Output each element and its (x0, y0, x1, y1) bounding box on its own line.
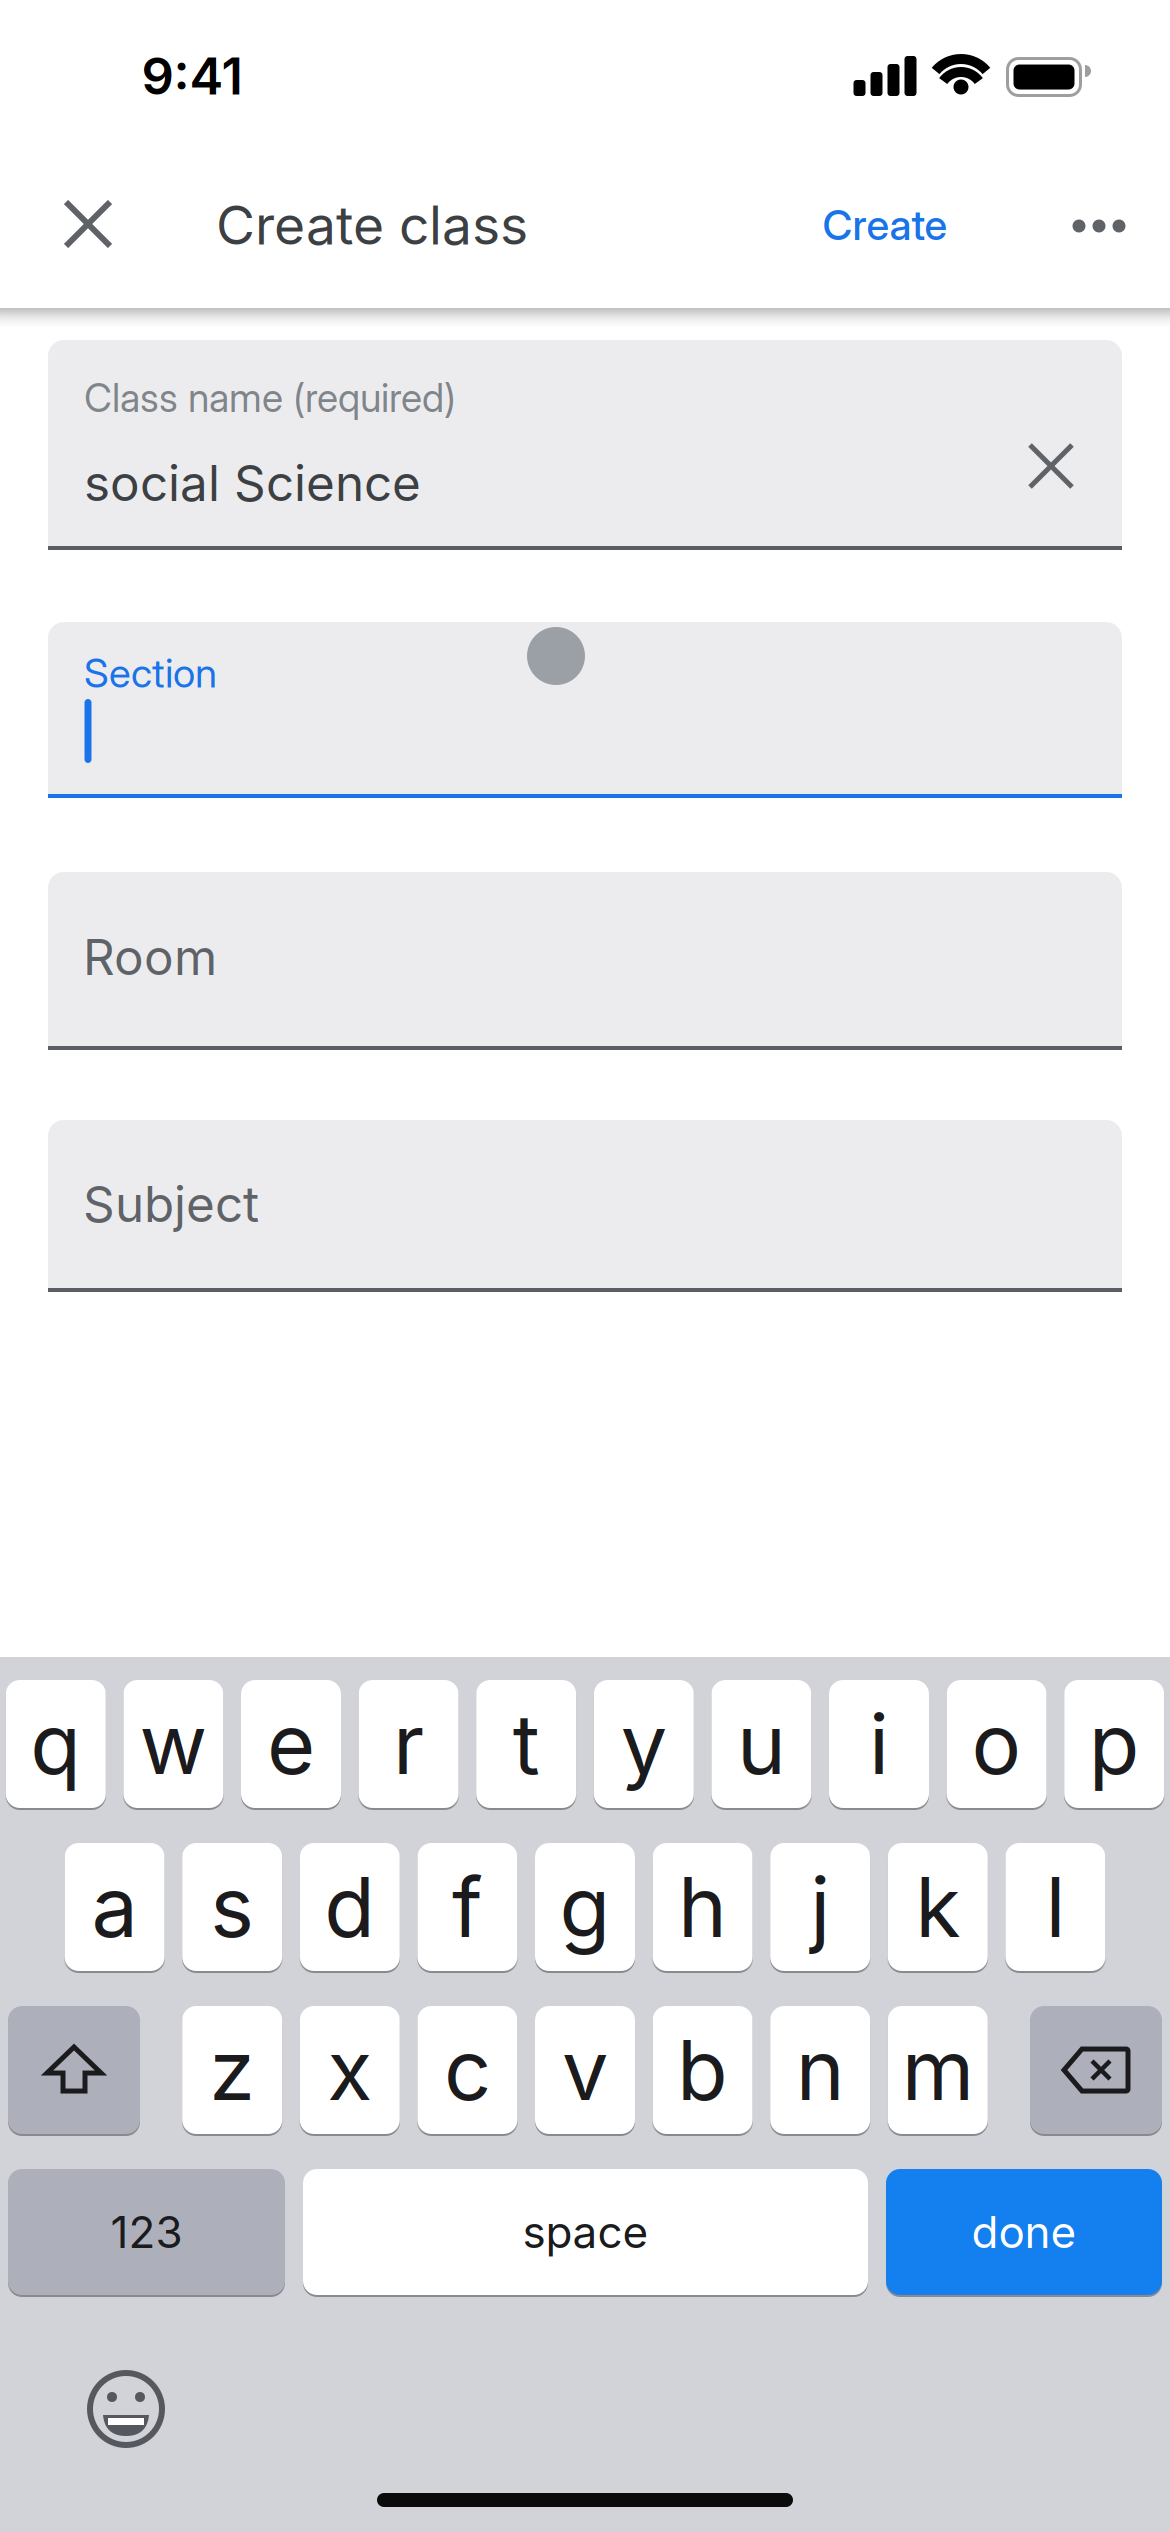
staticText: e (267, 1695, 315, 1793)
staticText: q (30, 1695, 81, 1793)
staticText: z (209, 2021, 255, 2119)
button[interactable]: h (653, 1843, 753, 1971)
button[interactable]: Shift (8, 2006, 140, 2134)
button[interactable]: z (182, 2006, 282, 2134)
button[interactable]: x (300, 2006, 400, 2134)
staticText: l (1045, 1858, 1065, 1956)
button[interactable]: a (65, 1843, 165, 1971)
staticText: 9:41 (141, 46, 242, 106)
staticText: c (444, 2021, 491, 2119)
button[interactable]: p (1064, 1680, 1164, 1808)
button[interactable]: Clear class name (1007, 422, 1095, 510)
staticText: s (210, 1858, 254, 1956)
button[interactable]: 123 (8, 2169, 285, 2295)
button[interactable]: Delete (1030, 2006, 1162, 2134)
staticText: p (1089, 1695, 1140, 1793)
button[interactable]: w (123, 1680, 223, 1808)
staticText: d (324, 1858, 375, 1956)
staticText: j (810, 1858, 830, 1956)
staticText: g (559, 1858, 610, 1956)
button[interactable]: Room (48, 872, 1122, 1050)
button[interactable]: Close (44, 180, 132, 268)
staticText: k (915, 1858, 960, 1956)
staticText: u (737, 1695, 786, 1793)
staticText: t (513, 1695, 540, 1793)
button[interactable]: n (770, 2006, 870, 2134)
button[interactable]: g (535, 1843, 635, 1971)
button[interactable]: Subject (48, 1120, 1122, 1292)
staticText: w (139, 1695, 207, 1793)
staticText: y (621, 1695, 667, 1793)
staticText: space (522, 2206, 648, 2258)
button[interactable]: Class name (48, 340, 1122, 550)
staticText: h (678, 1858, 727, 1956)
staticText: i (869, 1695, 889, 1793)
staticText: Create class (216, 193, 528, 256)
staticText: n (796, 2021, 845, 2119)
staticText: 123 (110, 2206, 182, 2258)
button[interactable]: space (303, 2169, 868, 2295)
staticText: Subject (83, 1175, 259, 1233)
staticText: b (677, 2021, 728, 2119)
button[interactable]: r (359, 1680, 459, 1808)
button[interactable]: Create (765, 181, 1005, 269)
staticText: Room (83, 928, 217, 986)
button[interactable]: e (241, 1680, 341, 1808)
button[interactable]: l (1005, 1843, 1105, 1971)
button[interactable]: c (417, 2006, 517, 2134)
button[interactable]: f (417, 1843, 517, 1971)
staticText: Section (84, 649, 217, 697)
button[interactable]: v (535, 2006, 635, 2134)
staticText: x (327, 2021, 372, 2119)
button[interactable]: done (886, 2169, 1162, 2295)
button[interactable]: k (888, 1843, 988, 1971)
button[interactable]: More options (1055, 182, 1143, 270)
staticText: f (452, 1858, 483, 1956)
staticText: social Science (84, 454, 421, 512)
button[interactable]: j (770, 1843, 870, 1971)
button[interactable]: t (476, 1680, 576, 1808)
staticText: Class name (required) (84, 375, 456, 421)
staticText: m (902, 2021, 974, 2119)
button[interactable]: u (711, 1680, 811, 1808)
button[interactable]: m (888, 2006, 988, 2134)
staticText: v (562, 2021, 608, 2119)
button[interactable]: Emoji (76, 2359, 176, 2459)
button[interactable]: b (653, 2006, 753, 2134)
button[interactable]: Section (48, 622, 1122, 798)
staticText: done (971, 2206, 1076, 2258)
staticText: Create (822, 201, 947, 249)
button[interactable]: y (594, 1680, 694, 1808)
button[interactable]: i (829, 1680, 929, 1808)
staticText: a (92, 1858, 138, 1956)
staticText: o (972, 1695, 1022, 1793)
button[interactable]: o (947, 1680, 1047, 1808)
button[interactable]: s (182, 1843, 282, 1971)
button[interactable]: d (300, 1843, 400, 1971)
button[interactable]: q (6, 1680, 106, 1808)
staticText: r (393, 1695, 424, 1793)
